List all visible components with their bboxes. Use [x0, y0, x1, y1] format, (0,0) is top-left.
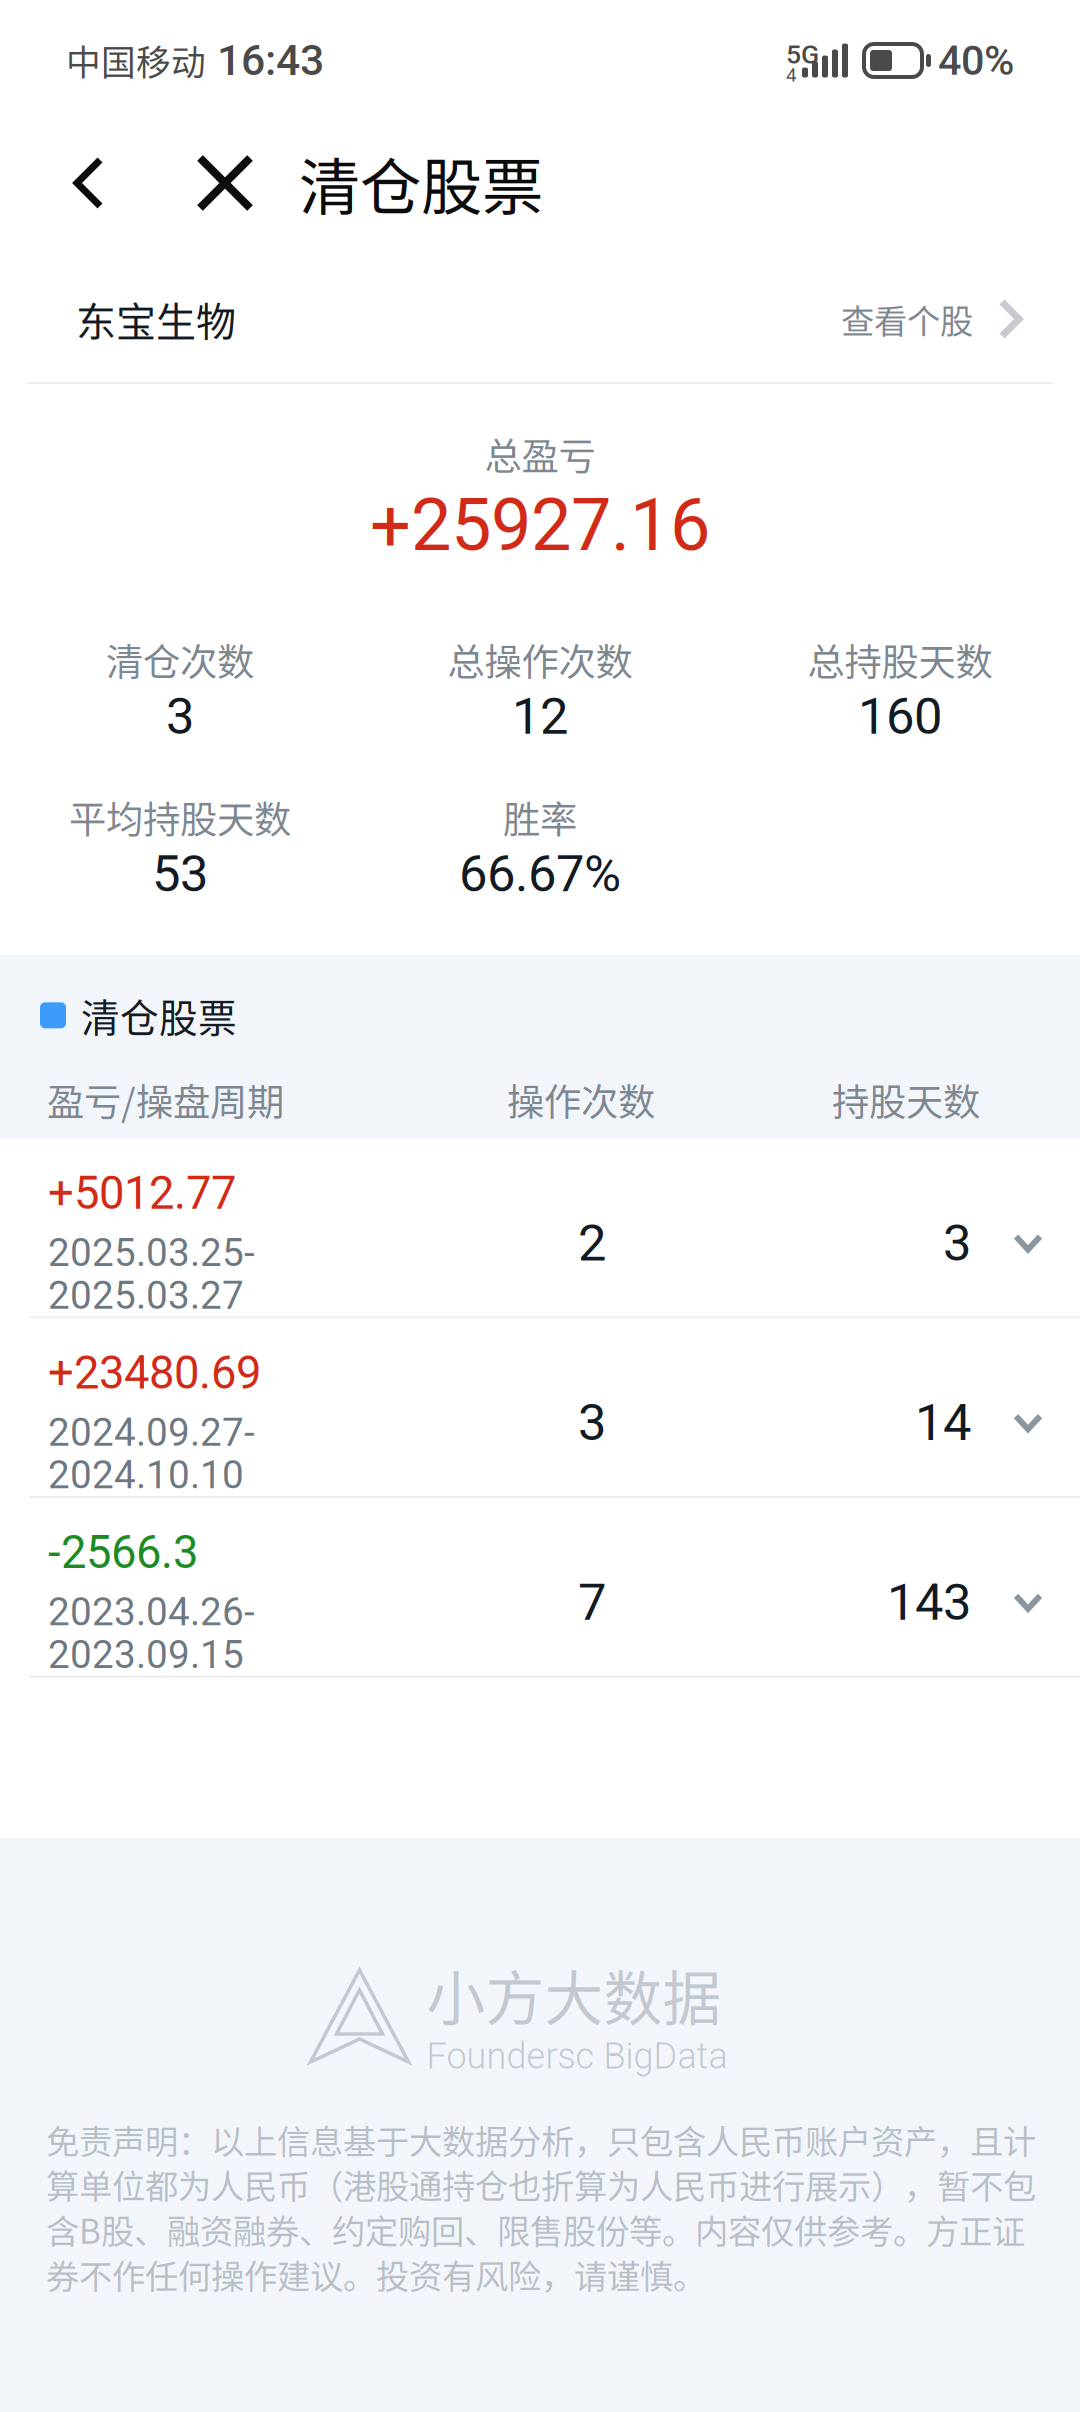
staticText: 7 [578, 1581, 606, 1623]
staticText: +23480.69 [48, 1354, 261, 1392]
staticText: 12 [512, 696, 568, 737]
button[interactable]: +5012.77 [0, 1139, 1080, 1316]
staticText: 40% [938, 43, 1014, 77]
staticText: 5G [786, 43, 819, 65]
staticText: 160 [858, 696, 942, 737]
staticText: 总持股天数 [807, 641, 992, 679]
staticText: 免责声明：以上信息基于大数据分析，只包含人民币账户资产，且计算单位都为人民币（港… [46, 2117, 1036, 2297]
staticText: 操作次数 [507, 1081, 655, 1119]
staticText: Foundersc BigData [426, 2041, 727, 2071]
staticText: 总盈亏 [484, 435, 595, 473]
staticText: 总操作次数 [447, 641, 632, 679]
button[interactable]: -2566.3 [0, 1498, 1080, 1676]
staticText: 查看个股 [841, 302, 973, 336]
staticText: 平均持股天数 [69, 798, 291, 836]
staticText: 3 [943, 1222, 971, 1264]
staticText: 清仓股票 [299, 152, 543, 214]
button[interactable]: Back [73, 127, 168, 239]
staticText: 14 [915, 1402, 971, 1443]
staticText: 66.67% [459, 853, 621, 895]
staticText: 2024.09.27- [48, 1417, 255, 1448]
staticText: 16:43 [206, 43, 324, 78]
staticText: +5012.77 [48, 1175, 236, 1212]
staticText: -2566.3 [48, 1534, 198, 1571]
staticText: 4 [786, 67, 796, 83]
staticText: 2023.09.15 [48, 1639, 244, 1671]
staticText: 胜率 [503, 798, 577, 836]
button[interactable]: 东宝生物 [0, 256, 1080, 382]
staticText: 2 [578, 1222, 606, 1264]
staticText: 小方大数据 [426, 1965, 721, 2024]
staticText: 3 [578, 1402, 606, 1443]
button[interactable]: Close [168, 127, 282, 239]
button[interactable]: +23480.69 [0, 1318, 1080, 1496]
staticText: 东宝生物 [76, 299, 236, 339]
staticText: 53 [152, 853, 208, 895]
staticText: 清仓次数 [106, 641, 254, 679]
staticText: +25927.16 [370, 496, 710, 555]
staticText: 盈亏/操盘周期 [47, 1081, 284, 1119]
staticText: 2024.10.10 [48, 1459, 244, 1491]
staticText: 持股天数 [832, 1081, 980, 1119]
staticText: 清仓股票 [81, 996, 237, 1035]
staticText: 2023.04.26- [48, 1596, 255, 1628]
staticText: 中国移动 [66, 43, 206, 78]
staticText: 3 [166, 696, 194, 737]
staticText: 2025.03.25- [48, 1237, 255, 1269]
staticText: 143 [887, 1581, 971, 1623]
staticText: 2025.03.27 [48, 1280, 244, 1311]
